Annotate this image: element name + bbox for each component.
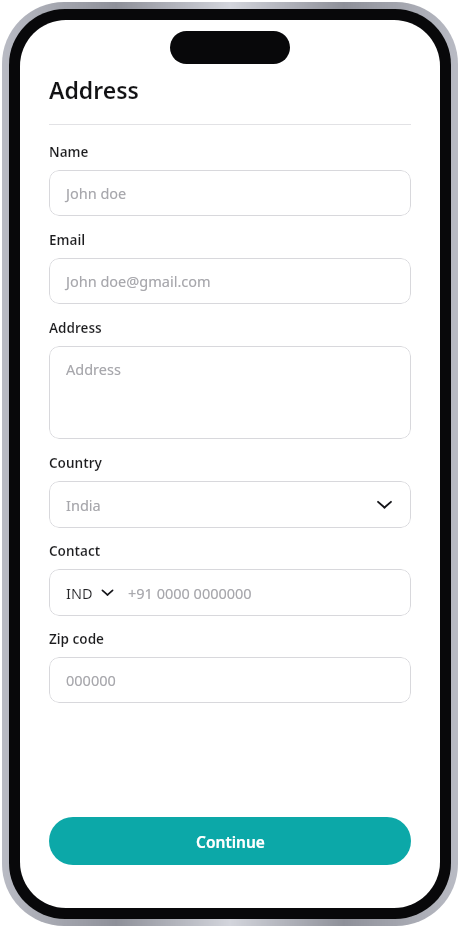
- staticText: IND: [66, 583, 93, 603]
- staticText: John doe: [66, 183, 127, 203]
- staticText: Address: [66, 359, 121, 379]
- staticText: India: [66, 495, 375, 515]
- staticText: John doe@gmail.com: [66, 271, 211, 291]
- button[interactable]: John doe@gmail.com: [49, 258, 411, 304]
- button[interactable]: John doe: [49, 170, 411, 216]
- other: Select country: [375, 495, 394, 514]
- staticText: Zip code: [49, 630, 105, 648]
- staticText: Address: [49, 74, 139, 105]
- staticText: Name: [49, 143, 89, 161]
- button[interactable]: IND: [49, 569, 411, 616]
- staticText: +91 0000 0000000: [128, 583, 252, 603]
- button[interactable]: Continue: [49, 817, 411, 865]
- button[interactable]: 000000: [49, 657, 411, 703]
- staticText: Country: [49, 454, 102, 472]
- staticText: Email: [49, 231, 86, 249]
- staticText: Contact: [49, 542, 101, 560]
- staticText: 000000: [66, 670, 116, 690]
- button[interactable]: Address: [49, 346, 411, 439]
- button[interactable]: India: [49, 481, 411, 528]
- staticText: Address: [49, 319, 102, 337]
- staticText: Continue: [196, 831, 265, 852]
